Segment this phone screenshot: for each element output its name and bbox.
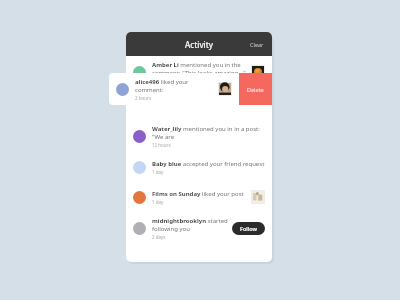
- staticText: Delete: [247, 86, 264, 93]
- staticText: Clear: [250, 41, 264, 48]
- staticText: 2 days: [152, 234, 166, 240]
- staticText: 1 day: [152, 199, 164, 205]
- button[interactable]: Delete: [238, 73, 272, 105]
- staticText: 2 hours: [135, 95, 152, 101]
- staticText: Water_lily mentioned you in in a post: "…: [152, 125, 265, 141]
- staticText: Films on Sunday liked your post: [152, 190, 244, 198]
- staticText: Baby blue accepted your friend request: [152, 160, 265, 168]
- staticText: midnightbrooklyn started following you: [152, 217, 228, 233]
- button[interactable]: Clear: [242, 35, 272, 54]
- staticText: 1 day: [152, 169, 164, 175]
- button[interactable]: alice496 liked your comment: "Congratula…: [109, 73, 239, 105]
- staticText: 12 hours: [152, 142, 171, 148]
- button[interactable]: Water_lily mentioned you in in a post: "…: [126, 120, 272, 152]
- button[interactable]: Amber Li mentioned you in the comment: "…: [126, 56, 272, 88]
- staticText: Follow: [240, 225, 257, 232]
- button[interactable]: Follow: [232, 222, 265, 235]
- staticText: Activity: [185, 39, 214, 50]
- button[interactable]: Baby blue accepted your friend request: [126, 152, 272, 182]
- button[interactable]: midnightbrooklyn started following you: [126, 212, 272, 244]
- staticText: Amber Li mentioned you in the comment: "…: [152, 61, 246, 77]
- button[interactable]: Films on Sunday liked your post: [126, 182, 272, 212]
- staticText: alice496 liked your comment: "Congratula…: [135, 78, 214, 94]
- staticText: 3 mins: [152, 78, 167, 84]
